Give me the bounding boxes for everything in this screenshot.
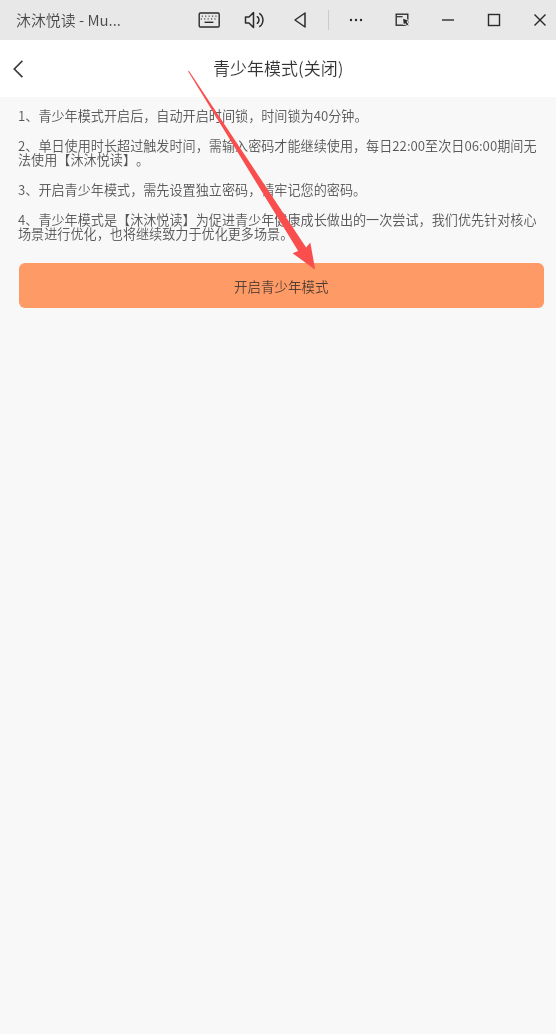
- staticText: 3、开启青少年模式，需先设置独立密码，请牢记您的密码。: [18, 180, 367, 199]
- button[interactable]: Maximize: [471, 0, 517, 40]
- button[interactable]: Back: [277, 0, 323, 40]
- button[interactable]: Volume: [231, 0, 277, 40]
- button[interactable]: Back: [0, 45, 42, 93]
- button[interactable]: Keyboard: [185, 0, 231, 40]
- button[interactable]: Screenshot: [379, 0, 425, 40]
- button[interactable]: Minimize: [425, 0, 471, 40]
- staticText: 沐沐悦读 - Mu...: [16, 9, 121, 31]
- button[interactable]: 开启青少年模式: [19, 263, 544, 308]
- staticText: 1、青少年模式开启后，自动开启时间锁，时间锁为40分钟。: [18, 106, 368, 125]
- staticText: 4、青少年模式是【沐沐悦读】为促进青少年健康成长做出的一次尝试，我们优先针对核心…: [18, 210, 544, 243]
- button[interactable]: Close: [517, 0, 556, 40]
- staticText: 2、单日使用时长超过触发时间，需输入密码才能继续使用，每日22:00至次日06:…: [18, 136, 544, 169]
- staticText: 开启青少年模式: [234, 276, 329, 296]
- staticText: 青少年模式(关闭): [213, 55, 344, 80]
- button[interactable]: More: [333, 0, 379, 40]
